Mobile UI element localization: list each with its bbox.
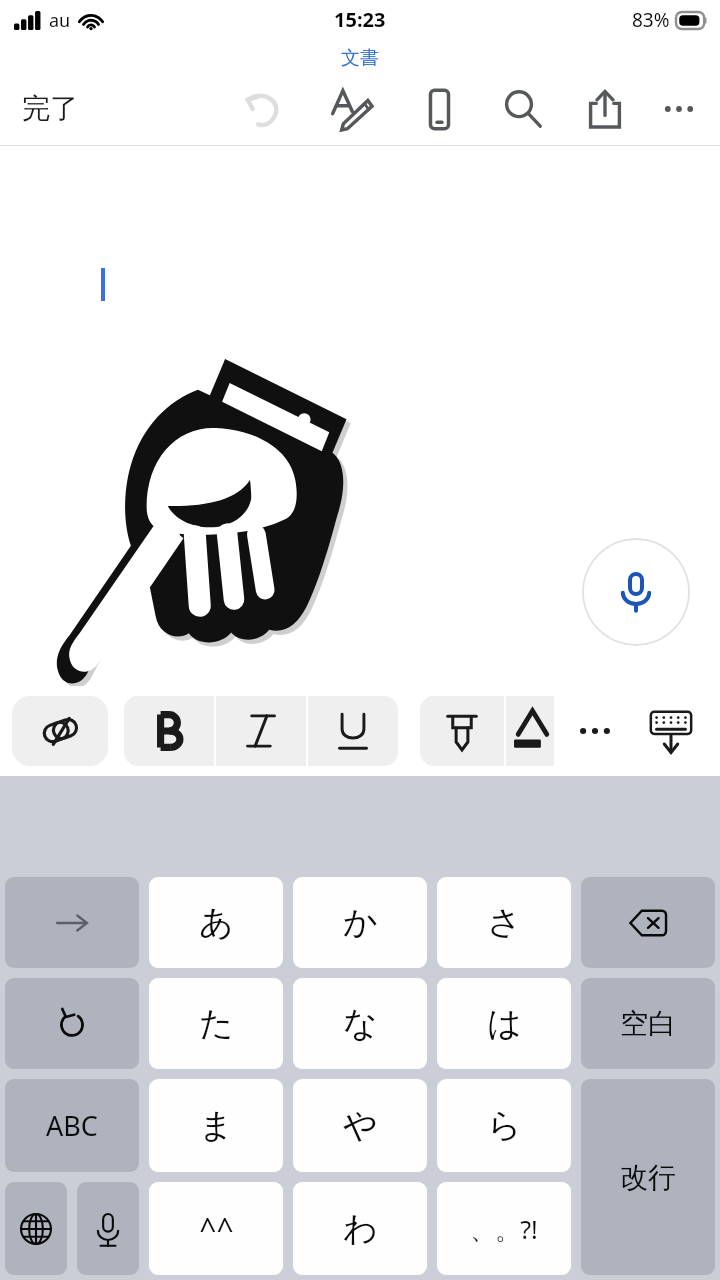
- button[interactable]: ^^: [149, 1182, 283, 1275]
- button[interactable]: Voice input: [77, 1182, 139, 1275]
- button[interactable]: Bold: [124, 696, 214, 766]
- button[interactable]: Next: [5, 877, 139, 968]
- button[interactable]: ら: [437, 1079, 571, 1172]
- staticText: あ: [199, 901, 234, 944]
- staticText: は: [487, 1002, 522, 1045]
- staticText: ら: [487, 1104, 522, 1147]
- button[interactable]: Underline: [308, 696, 398, 766]
- button[interactable]: 、。?!: [437, 1182, 571, 1275]
- staticText: ABC: [46, 1107, 98, 1144]
- button[interactable]: Undo: [230, 76, 296, 142]
- button[interactable]: Text color: [506, 696, 554, 766]
- button[interactable]: 改行: [581, 1079, 715, 1275]
- button[interactable]: Share: [572, 76, 638, 142]
- button[interactable]: た: [149, 978, 283, 1069]
- button[interactable]: は: [437, 978, 571, 1069]
- button[interactable]: さ: [437, 877, 571, 968]
- button[interactable]: ABC: [5, 1079, 139, 1172]
- staticText: 空白: [620, 1006, 676, 1041]
- button[interactable]: Delete: [581, 877, 715, 968]
- staticText: や: [343, 1104, 378, 1147]
- staticText: 、。?!: [470, 1212, 538, 1246]
- button[interactable]: Hide keyboard: [636, 696, 706, 766]
- button[interactable]: わ: [293, 1182, 427, 1275]
- staticText: さ: [487, 901, 522, 944]
- staticText: か: [343, 901, 378, 944]
- staticText: ま: [199, 1104, 234, 1147]
- button[interactable]: ま: [149, 1079, 283, 1172]
- button[interactable]: Italic: [216, 696, 306, 766]
- button[interactable]: や: [293, 1079, 427, 1172]
- staticText: 83%: [632, 7, 670, 33]
- staticText: ^^: [199, 1208, 234, 1249]
- staticText: 完了: [22, 91, 78, 126]
- button[interactable]: な: [293, 978, 427, 1069]
- button[interactable]: More formatting: [564, 700, 626, 762]
- staticText: た: [199, 1002, 234, 1045]
- staticText: 15:23: [334, 6, 386, 33]
- staticText: au: [49, 8, 71, 33]
- button[interactable]: Highlighter: [420, 696, 504, 766]
- button[interactable]: Dictate: [582, 538, 690, 646]
- staticText: な: [343, 1002, 378, 1045]
- button[interactable]: More: [648, 78, 710, 140]
- staticText: 文書: [341, 46, 379, 70]
- staticText: わ: [343, 1207, 378, 1250]
- button[interactable]: 完了: [6, 83, 94, 134]
- staticText: 改行: [620, 1160, 676, 1195]
- button[interactable]: Search: [490, 76, 556, 142]
- button[interactable]: 空白: [581, 978, 715, 1069]
- button[interactable]: か: [293, 877, 427, 968]
- button[interactable]: Markup: [318, 76, 384, 142]
- button[interactable]: Styles: [12, 696, 108, 766]
- button[interactable]: Switch keyboard: [5, 1182, 67, 1275]
- button[interactable]: あ: [149, 877, 283, 968]
- button[interactable]: Undo: [5, 978, 139, 1069]
- button[interactable]: Phone view: [406, 76, 472, 142]
